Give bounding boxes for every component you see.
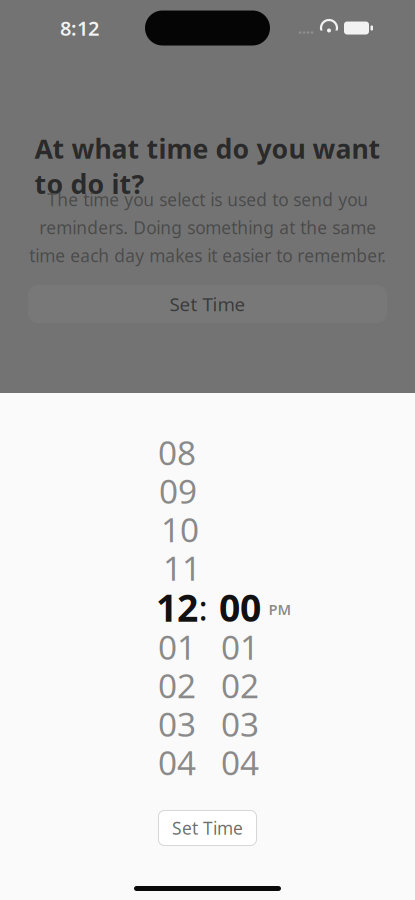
staticText: 8:12 bbox=[60, 15, 99, 41]
staticText: Set Time bbox=[172, 816, 243, 839]
staticText: 09 bbox=[159, 469, 197, 513]
staticText: : bbox=[198, 584, 207, 630]
staticText: 04 bbox=[221, 740, 259, 784]
staticText: 04 bbox=[158, 740, 196, 784]
staticText: 12 bbox=[156, 582, 198, 632]
staticText: PM bbox=[268, 599, 291, 619]
staticText: 08 bbox=[158, 430, 196, 474]
staticText: 03 bbox=[158, 702, 196, 746]
staticText: 10 bbox=[161, 507, 199, 551]
staticText: Set Time bbox=[169, 292, 245, 316]
staticText: 11 bbox=[163, 546, 201, 590]
staticText: At what time do you want to do it? bbox=[34, 131, 380, 201]
staticText: .... bbox=[298, 18, 314, 38]
staticText: 03 bbox=[221, 702, 259, 746]
button[interactable]: Set Time bbox=[28, 285, 387, 323]
staticText: 02 bbox=[158, 663, 196, 707]
staticText: The time you select is used to send you … bbox=[29, 188, 386, 267]
staticText: 01 bbox=[158, 625, 196, 669]
staticText: 02 bbox=[221, 663, 259, 707]
staticText: 00 bbox=[219, 582, 261, 632]
button[interactable]: Set Time bbox=[158, 810, 256, 845]
staticText: 01 bbox=[221, 625, 259, 669]
